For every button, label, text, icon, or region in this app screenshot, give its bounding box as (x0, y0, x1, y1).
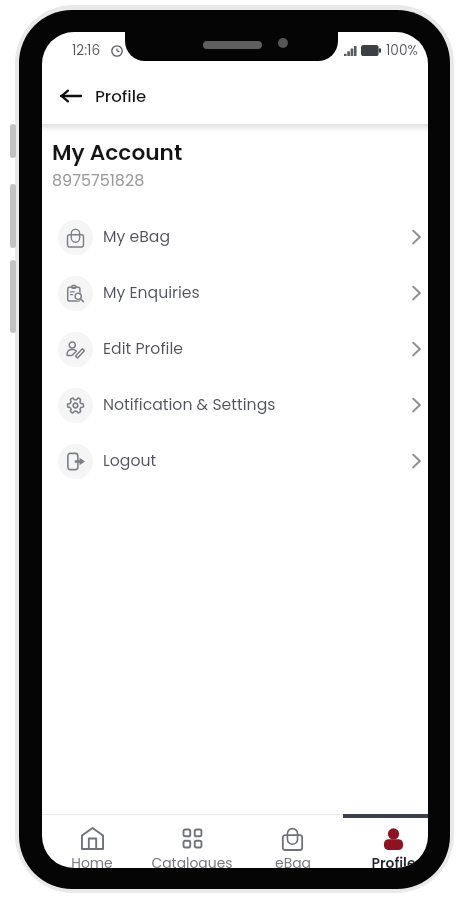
button[interactable]: Back (53, 78, 89, 114)
button[interactable]: Catalogues (142, 814, 242, 868)
button[interactable]: My Enquiries (42, 265, 428, 321)
staticText: My eBag (103, 226, 171, 248)
staticText: 12:16 (72, 41, 101, 60)
staticText: Notification & Settings (103, 394, 276, 416)
staticText: Profile (371, 853, 416, 868)
staticText: My Enquiries (103, 282, 200, 304)
staticText: Catalogues (151, 853, 233, 868)
staticText: 8975751828 (52, 169, 145, 191)
button[interactable]: My eBag (42, 209, 428, 265)
staticText: Logout (103, 450, 157, 472)
button[interactable]: Home (42, 814, 142, 868)
staticText: My Account (52, 137, 183, 167)
button[interactable]: Notification & Settings (42, 377, 428, 433)
button[interactable]: Profile (343, 814, 428, 868)
staticText: Edit Profile (103, 338, 183, 360)
button[interactable]: Logout (42, 433, 428, 489)
button[interactable]: eBag (242, 814, 343, 868)
staticText: Home (71, 853, 113, 868)
staticText: Profile (95, 85, 147, 108)
staticText: eBag (275, 853, 311, 868)
staticText: 100% (386, 41, 418, 60)
button[interactable]: Edit Profile (42, 321, 428, 377)
